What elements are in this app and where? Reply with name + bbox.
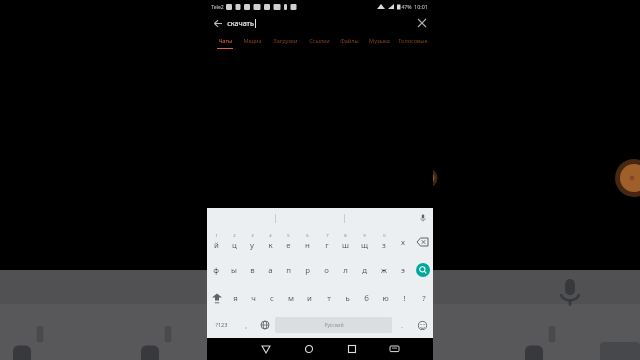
button[interactable]: и [300, 284, 319, 312]
button[interactable]: Hide keyboard [373, 338, 416, 360]
staticText: л [343, 265, 348, 276]
staticText: ф [213, 265, 219, 276]
staticText: ц [232, 240, 237, 251]
staticText: у [250, 240, 254, 251]
staticText: а [268, 265, 273, 276]
button[interactable]: 1 [207, 228, 225, 256]
button[interactable]: я [226, 284, 244, 312]
staticText: Русский [324, 322, 344, 329]
button[interactable]: скачать [227, 13, 411, 33]
button[interactable]: ф [207, 256, 225, 284]
button[interactable]: б [357, 284, 376, 312]
staticText: н [305, 240, 310, 251]
button[interactable]: 6 [298, 228, 317, 256]
staticText: Файлы [340, 37, 359, 45]
staticText: ч [251, 293, 256, 304]
staticText: 5 [287, 233, 290, 239]
button[interactable]: Загрузки [267, 33, 304, 53]
button[interactable]: Back [244, 338, 287, 360]
button[interactable]: с [262, 284, 281, 312]
button[interactable]: 4 [261, 228, 279, 256]
staticText: Медиа [243, 37, 262, 45]
staticText: 4 [269, 233, 272, 239]
staticText: й [214, 240, 219, 251]
staticText: Ссылки [309, 37, 330, 45]
button[interactable]: ! [395, 284, 414, 312]
button[interactable]: Музыка [364, 33, 394, 53]
staticText: з [382, 240, 386, 251]
button[interactable]: Clear search [411, 13, 433, 33]
button[interactable]: 3 [243, 228, 261, 256]
button[interactable]: д [355, 256, 374, 284]
button[interactable]: ?123 [207, 312, 236, 338]
button[interactable]: 9 [355, 228, 374, 256]
staticText: х [401, 237, 405, 248]
button[interactable]: о [317, 256, 336, 284]
button[interactable]: в [243, 256, 261, 284]
button[interactable]: Медиа [237, 33, 267, 53]
button[interactable]: Файлы [334, 33, 364, 53]
staticText: Загрузки [273, 37, 298, 45]
staticText: . [401, 321, 403, 330]
button[interactable]: м [281, 284, 300, 312]
staticText: с [270, 293, 274, 304]
button[interactable]: 5 [279, 228, 298, 256]
button[interactable]: х [393, 228, 412, 256]
staticText: г [325, 240, 329, 251]
button[interactable]: Change language [255, 312, 275, 338]
button[interactable]: ч [244, 284, 262, 312]
button[interactable]: Back [207, 13, 227, 33]
button[interactable]: ы [225, 256, 243, 284]
button[interactable]: ь [338, 284, 357, 312]
button[interactable]: 8 [336, 228, 355, 256]
button[interactable]: Home [287, 338, 330, 360]
staticText: 10:01 [414, 3, 428, 10]
staticText: ж [381, 265, 387, 276]
staticText: 47% [401, 3, 412, 10]
button[interactable]: р [298, 256, 317, 284]
staticText: Голосовые [398, 37, 428, 45]
staticText: к [268, 240, 273, 251]
button[interactable]: Recent apps [330, 338, 373, 360]
staticText: 9 [363, 233, 366, 239]
button[interactable]: л [336, 256, 355, 284]
staticText: Tele2 [211, 3, 224, 10]
button[interactable]: п [279, 256, 298, 284]
button[interactable]: а [261, 256, 279, 284]
button[interactable]: Чаты [213, 33, 237, 53]
staticText: скачать [227, 18, 254, 28]
staticText: р [305, 265, 310, 276]
button[interactable]: ? [414, 284, 433, 312]
staticText: о [324, 265, 329, 276]
staticText: ь [345, 293, 350, 304]
button[interactable]: 7 [317, 228, 336, 256]
button[interactable]: Search [412, 256, 433, 284]
staticText: б [364, 293, 369, 304]
button[interactable]: Shift [207, 284, 226, 312]
staticText: ы [231, 265, 237, 276]
button[interactable]: Voice input [413, 208, 433, 228]
button[interactable]: Ссылки [304, 33, 334, 53]
button[interactable]: Русский [275, 317, 392, 333]
button[interactable]: т [319, 284, 338, 312]
staticText: 7 [326, 233, 329, 239]
button[interactable]: Emoji [411, 312, 433, 338]
button[interactable]: ж [374, 256, 393, 284]
button[interactable]: э [393, 256, 412, 284]
staticText: в [250, 265, 255, 276]
staticText: т [327, 293, 331, 304]
staticText: э [401, 265, 405, 276]
button[interactable]: Голосовые [394, 33, 431, 53]
staticText: ю [382, 293, 389, 304]
button[interactable]: 0 [374, 228, 393, 256]
staticText: Музыка [369, 37, 390, 45]
staticText: и [307, 293, 312, 304]
staticText: я [233, 293, 238, 304]
button[interactable]: Backspace [412, 228, 433, 256]
staticText: 2 [233, 233, 236, 239]
button[interactable]: ю [376, 284, 395, 312]
button[interactable]: 2 [225, 228, 243, 256]
staticText: ? [422, 293, 426, 304]
